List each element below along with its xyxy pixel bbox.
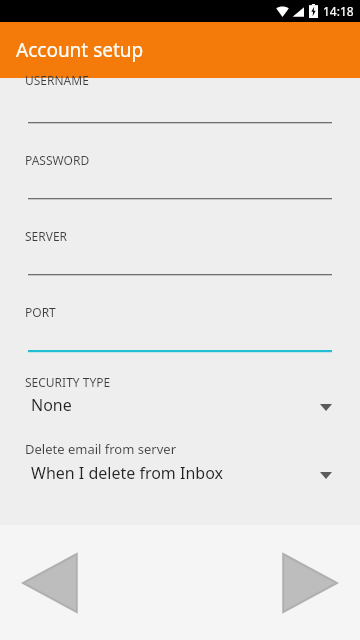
staticText: Delete email from server xyxy=(25,440,176,458)
staticText: PASSWORD xyxy=(25,152,90,168)
staticText: 14:18 xyxy=(323,3,354,19)
staticText: None xyxy=(31,394,72,416)
staticText: PORT xyxy=(25,304,56,320)
staticText: SERVER xyxy=(25,228,68,244)
button[interactable]: Previous xyxy=(18,550,84,616)
button[interactable]: Next xyxy=(276,550,342,616)
button[interactable]: PORT xyxy=(0,304,360,352)
button[interactable]: SECURITY TYPE xyxy=(0,374,360,416)
button[interactable]: PASSWORD xyxy=(0,152,360,228)
staticText: When I delete from Inbox xyxy=(31,462,223,484)
staticText: USERNAME xyxy=(25,72,89,86)
button[interactable]: Delete email from server xyxy=(0,440,360,484)
staticText: Account setup xyxy=(16,37,144,63)
button[interactable]: SERVER xyxy=(0,228,360,304)
staticText: SECURITY TYPE xyxy=(25,374,111,390)
